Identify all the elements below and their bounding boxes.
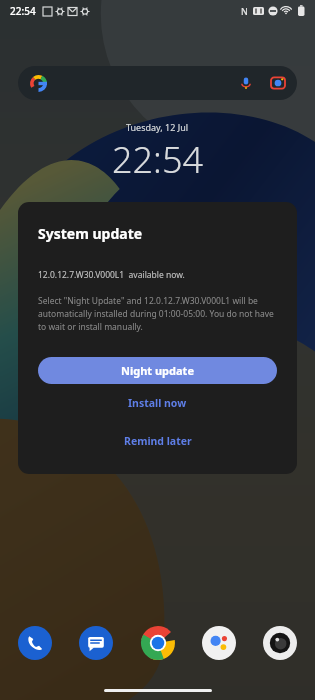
button[interactable]: Messages <box>75 622 117 664</box>
staticText: Install now <box>128 396 187 410</box>
button[interactable]: Install now <box>38 384 277 422</box>
button[interactable]: Night update <box>38 357 277 384</box>
other: Google Lens <box>271 76 285 90</box>
staticText: 22:54 <box>10 4 36 18</box>
button[interactable]: iManager <box>83 368 119 411</box>
staticText: Remind later <box>124 434 192 448</box>
button[interactable]: Google <box>252 368 286 411</box>
button[interactable]: Duo <box>29 368 63 411</box>
button[interactable]: Phone <box>14 622 56 664</box>
staticText: 22:54 <box>112 135 204 184</box>
button[interactable]: Play Store <box>195 368 232 411</box>
button[interactable]: Camera <box>259 622 301 664</box>
staticText: 12.0.12.7.W30.V000L1 available now. <box>38 269 185 281</box>
button[interactable]: Assistant <box>198 622 240 664</box>
staticText: Select "Night Update" and 12.0.12.7.W30.… <box>38 295 277 333</box>
staticText: Albums <box>145 401 170 411</box>
staticText: System update <box>38 224 143 243</box>
button[interactable]: Google Search <box>18 66 297 100</box>
staticText: N <box>241 5 248 17</box>
button[interactable]: Chrome <box>137 622 179 664</box>
staticText: Tuesday, 12 Jul <box>126 121 189 133</box>
button[interactable]: Albums <box>140 368 174 411</box>
staticText: Night update <box>121 363 194 378</box>
other: Google Search <box>30 75 47 92</box>
button[interactable]: Remind later <box>38 422 277 460</box>
other: Voice search <box>239 76 253 90</box>
